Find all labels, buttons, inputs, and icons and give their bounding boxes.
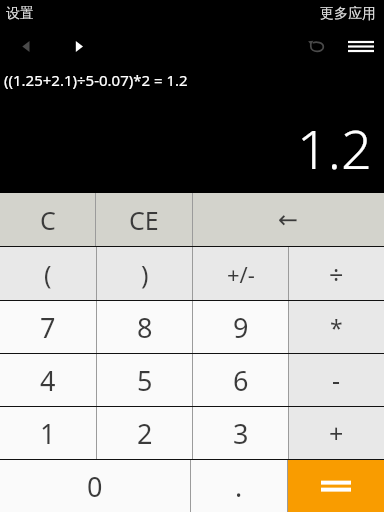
staticText: ( [44,257,52,291]
staticText: * [330,312,343,343]
staticText: CE [129,203,159,237]
staticText: +/- [227,259,255,289]
button[interactable]: 6 [193,354,288,406]
staticText: 3 [233,415,249,452]
staticText: 1.2 [297,111,372,185]
staticText: 0 [87,468,103,505]
button[interactable]: 2 [97,407,192,459]
button[interactable]: Next expression [52,28,104,64]
button[interactable]: 1 [0,407,96,459]
button[interactable]: Backspace [193,193,384,246]
button[interactable]: 7 [0,301,96,353]
button[interactable]: 3 [193,407,288,459]
button[interactable]: Equals [288,460,384,512]
staticText: ÷ [329,257,344,291]
button[interactable]: CE [96,193,192,246]
button[interactable]: ÷ [289,247,384,300]
button[interactable]: 5 [97,354,192,406]
staticText: ((1.25+2.1)÷5-0.07)*2 = 1.2 [4,70,188,90]
button[interactable]: 0 [0,460,190,512]
button[interactable]: * [289,301,384,353]
staticText: 9 [233,309,249,346]
button[interactable]: C [0,193,95,246]
staticText: 更多应用 [320,5,376,23]
button[interactable]: Previous expression [0,28,52,64]
button[interactable]: Menu [338,28,384,64]
staticText: + [329,416,344,450]
staticText: C [40,203,56,237]
staticText: 6 [233,362,249,399]
staticText: 2 [137,415,153,452]
button[interactable]: ( [0,247,96,300]
button[interactable]: ) [97,247,192,300]
staticText: 8 [137,309,153,346]
staticText: - [332,363,341,397]
button[interactable]: 8 [97,301,192,353]
button[interactable]: 4 [0,354,96,406]
staticText: 7 [40,309,56,346]
staticText: ← [278,206,299,234]
button[interactable]: + [289,407,384,459]
button[interactable]: . [191,460,287,512]
button[interactable]: +/- [193,247,288,300]
staticText: ) [141,257,149,291]
button[interactable]: Undo [294,28,338,64]
button[interactable]: 9 [193,301,288,353]
staticText: 4 [40,362,56,399]
button[interactable]: 设置 [0,3,40,25]
button[interactable]: 更多应用 [314,3,384,25]
staticText: 设置 [6,5,34,23]
staticText: 1 [40,415,56,452]
staticText: . [235,468,243,505]
staticText: 5 [137,362,153,399]
button[interactable]: - [289,354,384,406]
